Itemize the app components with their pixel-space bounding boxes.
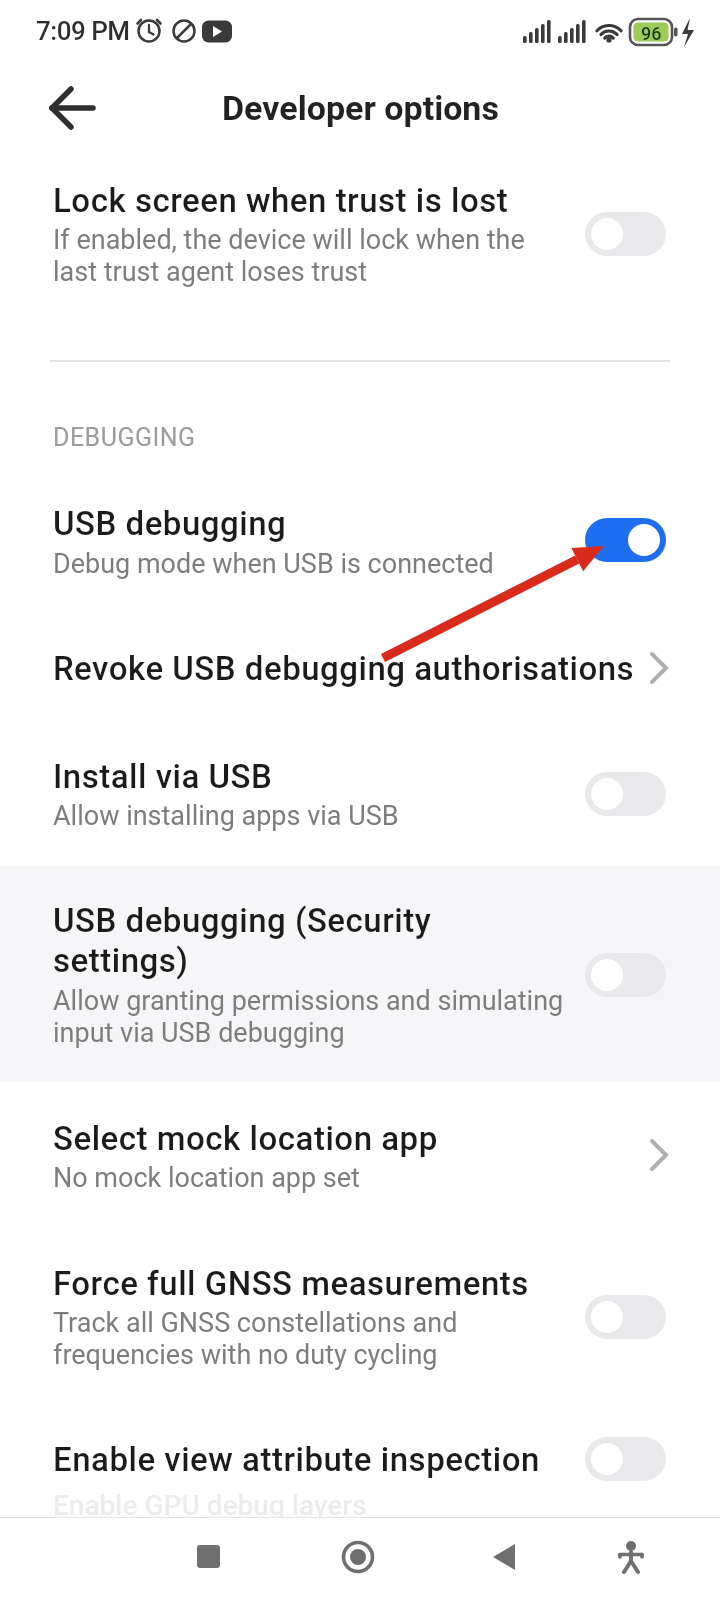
staticText: Track all GNSS constellations and freque…: [53, 1307, 458, 1371]
button[interactable]: [585, 212, 666, 256]
button[interactable]: Select mock location app: [0, 1100, 720, 1218]
staticText: Force full GNSS measurements: [53, 1264, 529, 1303]
button[interactable]: Revoke USB debugging authorisations: [0, 628, 720, 714]
staticText: Install via USB: [53, 757, 273, 796]
button[interactable]: [475, 1527, 535, 1587]
button[interactable]: [585, 1295, 666, 1339]
button[interactable]: Enable view attribute inspection: [0, 1420, 720, 1517]
staticText: USB debugging: [53, 504, 287, 543]
button[interactable]: [585, 772, 666, 816]
staticText: USB debugging (Security settings): [53, 901, 432, 980]
button[interactable]: [179, 1527, 239, 1587]
button[interactable]: [601, 1527, 661, 1587]
staticText: Revoke USB debugging authorisations: [53, 649, 635, 688]
button[interactable]: [585, 1437, 666, 1481]
staticText: If enabled, the device will lock when th…: [53, 224, 525, 288]
button[interactable]: [585, 953, 666, 997]
staticText: Select mock location app: [53, 1119, 438, 1158]
button[interactable]: Install via USB: [0, 740, 720, 856]
staticText: Debug mode when USB is connected: [53, 548, 494, 580]
button[interactable]: USB debugging: [0, 488, 720, 608]
staticText: No mock location app set: [53, 1162, 360, 1194]
button[interactable]: Lock screen when trust is lost: [0, 166, 720, 318]
staticText: Lock screen when trust is lost: [53, 181, 509, 220]
staticText: DEBUGGING: [53, 423, 196, 452]
button[interactable]: USB debugging (Security settings): [0, 866, 720, 1082]
button[interactable]: [328, 1527, 388, 1587]
staticText: Enable view attribute inspection: [53, 1440, 540, 1479]
button[interactable]: Force full GNSS measurements: [0, 1248, 720, 1388]
staticText: Allow installing apps via USB: [53, 800, 399, 832]
staticText: Enable GPU debug layers: [53, 1489, 367, 1522]
staticText: Allow granting permissions and simulatin…: [53, 985, 564, 1049]
staticText: 96: [641, 23, 662, 44]
button[interactable]: [585, 518, 666, 562]
button[interactable]: [42, 82, 102, 134]
staticText: 7:09 PM: [36, 16, 130, 46]
staticText: Developer options: [222, 88, 499, 128]
